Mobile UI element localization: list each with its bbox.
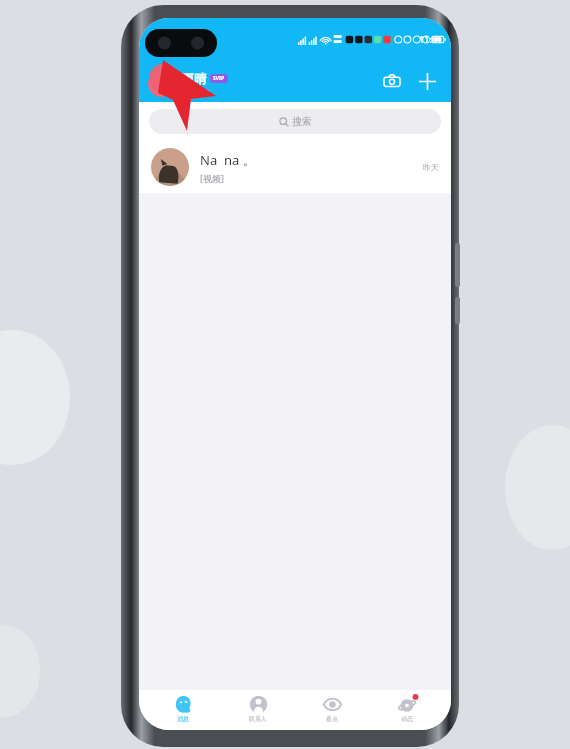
- staticText: 看点: [326, 715, 338, 723]
- staticText: 消息: [177, 715, 189, 723]
- button[interactable]: 消息: [152, 693, 214, 725]
- button[interactable]: 雨晴: [148, 70, 228, 97]
- staticText: 联系人: [249, 715, 267, 723]
- button[interactable]: Camera: [379, 68, 405, 94]
- staticText: 动态: [401, 715, 413, 723]
- staticText: SVIP: [213, 75, 225, 82]
- button[interactable]: Add: [414, 68, 440, 94]
- button[interactable]: 看点: [301, 693, 363, 725]
- staticText: 11:01: [419, 33, 443, 45]
- button[interactable]: Na na 。: [139, 141, 451, 193]
- button[interactable]: 动态: [376, 693, 438, 725]
- staticText: Na na 。: [200, 151, 256, 169]
- button[interactable]: 搜索: [149, 109, 441, 134]
- staticText: 雨晴: [182, 71, 206, 86]
- staticText: [视频]: [200, 172, 224, 184]
- staticText: 昨天: [423, 162, 439, 172]
- staticText: 搜索: [292, 115, 312, 128]
- button[interactable]: 联系人: [227, 693, 289, 725]
